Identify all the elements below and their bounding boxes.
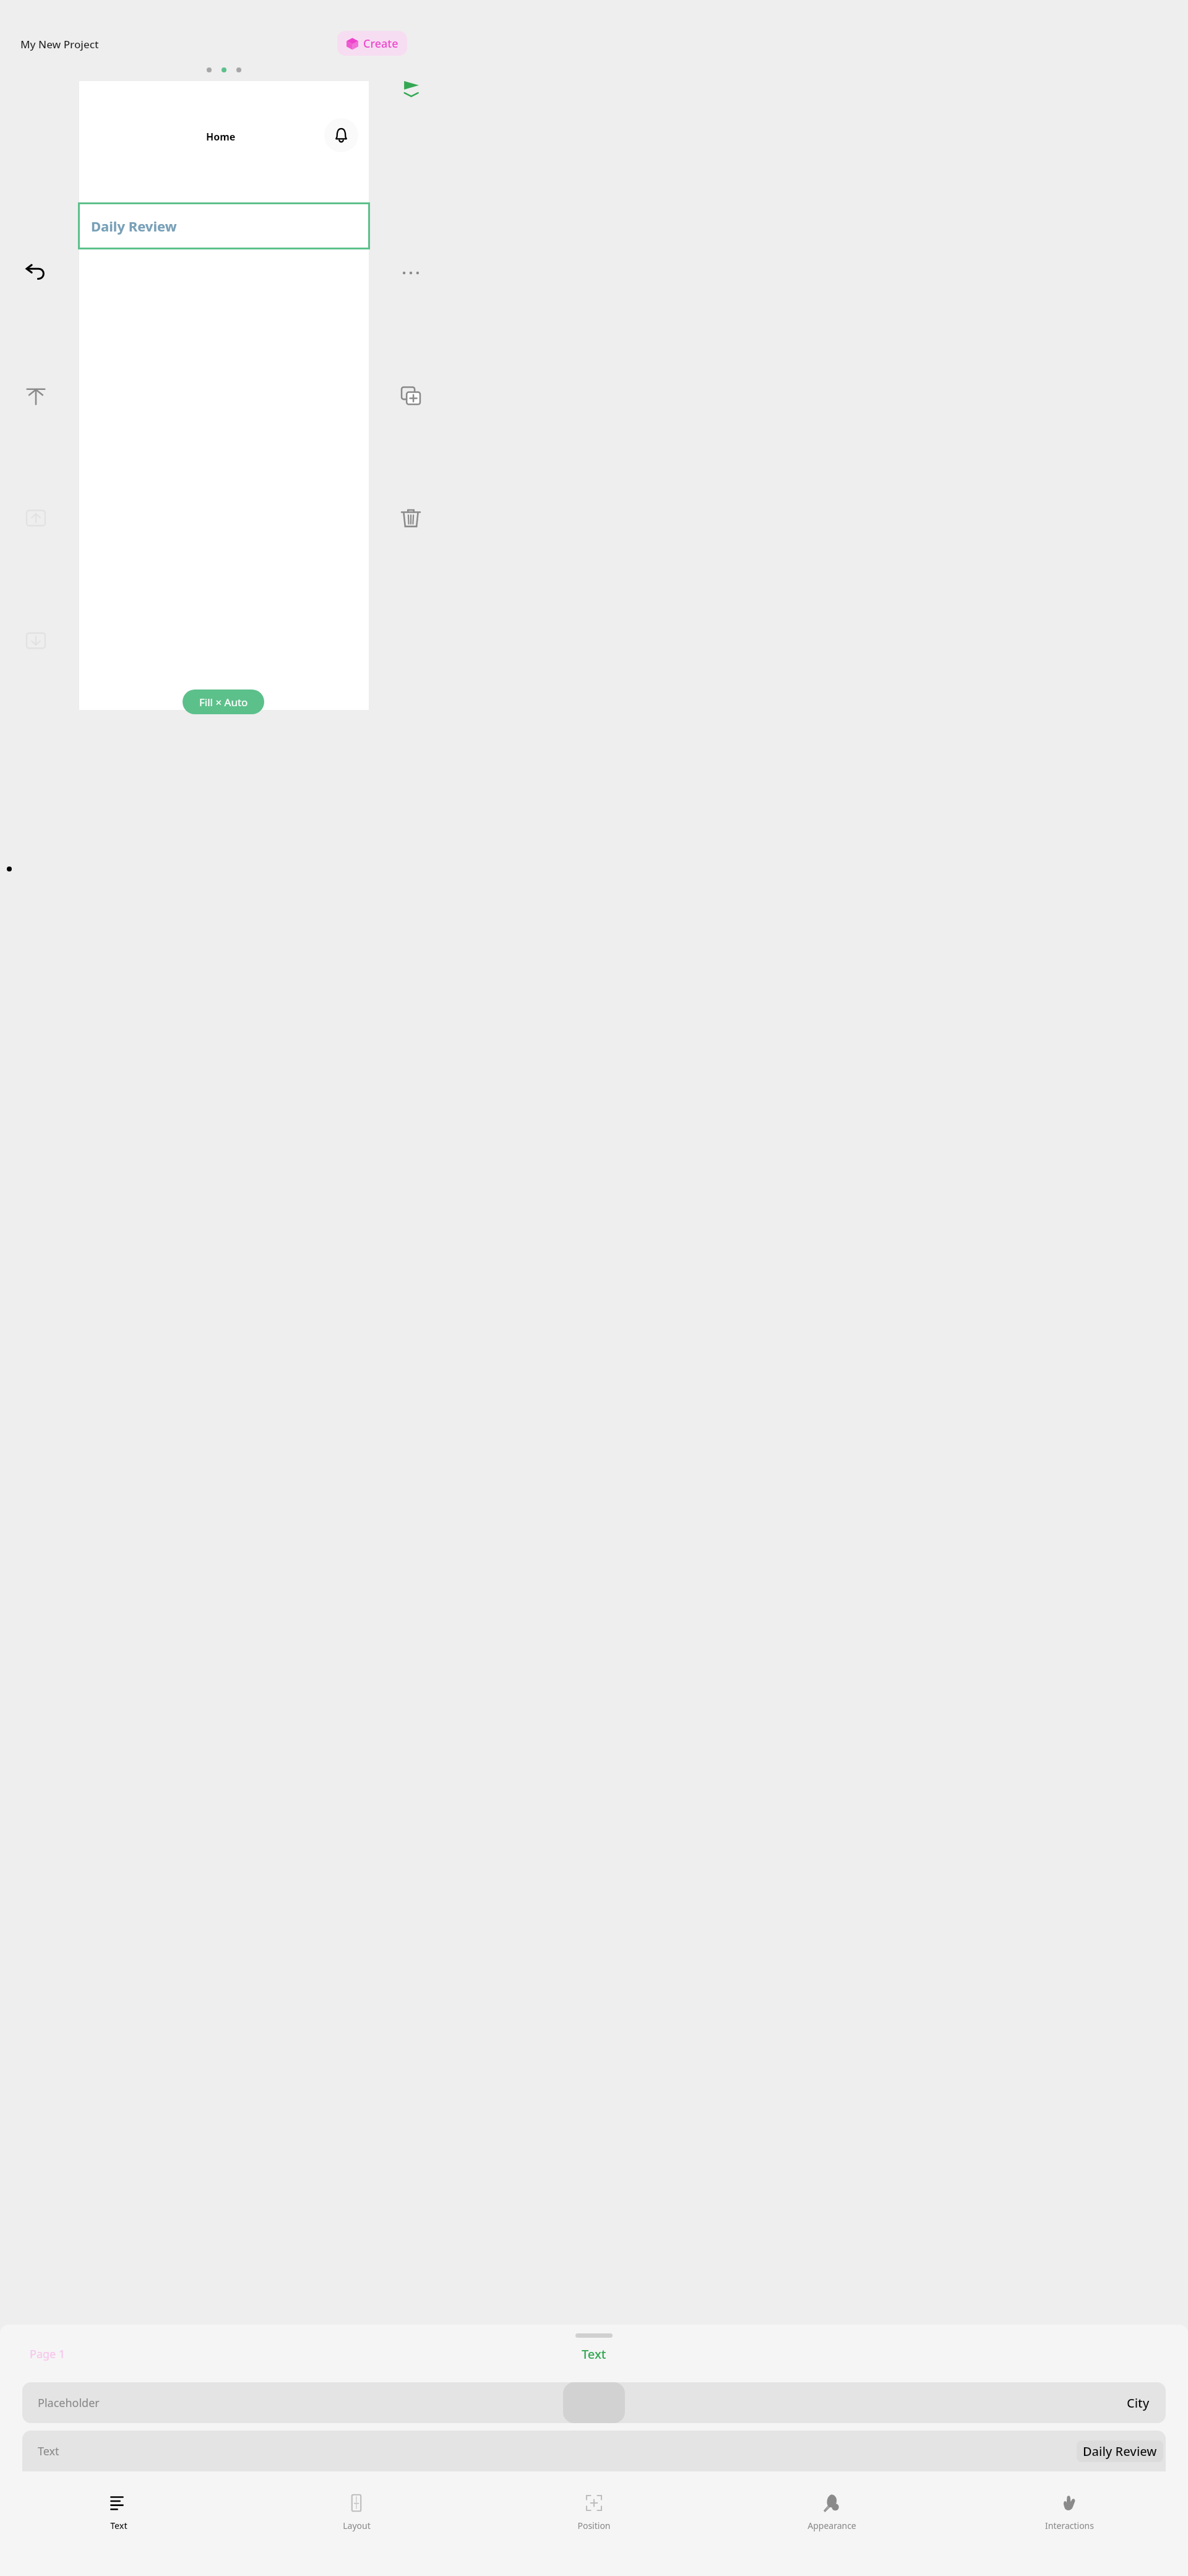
staticText: Text	[110, 2520, 127, 2531]
button[interactable]: Send backward	[20, 625, 52, 657]
staticText: Layout	[343, 2520, 371, 2531]
button[interactable]: Bring forward	[20, 502, 52, 534]
button[interactable]: Text	[0, 2489, 238, 2576]
button[interactable]: Interactions	[950, 2489, 1188, 2576]
staticText: Fill × Auto	[199, 695, 248, 709]
button[interactable]: Text	[22, 2431, 1166, 2471]
button[interactable]: Duplicate	[395, 379, 427, 412]
button[interactable]: Text	[582, 2346, 606, 2362]
staticText: Home	[206, 130, 236, 144]
staticText: Create	[363, 36, 398, 51]
button[interactable]: Create	[337, 31, 407, 56]
staticText: My New Project	[20, 37, 99, 51]
button[interactable]: Placeholder	[22, 2382, 1166, 2423]
staticText: Position	[577, 2520, 611, 2531]
staticText: Daily Review	[1083, 2443, 1157, 2460]
staticText: City	[1127, 2395, 1150, 2411]
button[interactable]: Layout	[238, 2489, 475, 2576]
staticText: Daily Review	[91, 217, 177, 235]
button[interactable]: Play	[395, 74, 427, 106]
button[interactable]: Position	[475, 2489, 713, 2576]
staticText: Placeholder	[38, 2395, 100, 2411]
button[interactable]: Undo	[20, 257, 52, 289]
staticText: Appearance	[807, 2520, 856, 2531]
button[interactable]: Daily Review	[78, 202, 370, 249]
button[interactable]: Fill × Auto	[183, 689, 264, 714]
button[interactable]: Page 1	[30, 2346, 66, 2362]
button[interactable]: Appearance	[713, 2489, 950, 2576]
staticText: Interactions	[1045, 2520, 1094, 2531]
button[interactable]: Notifications	[324, 118, 358, 152]
button[interactable]: Delete	[395, 502, 427, 534]
staticText: Text	[38, 2444, 59, 2459]
button[interactable]: More options	[395, 257, 427, 289]
button[interactable]: Align top	[20, 379, 52, 412]
